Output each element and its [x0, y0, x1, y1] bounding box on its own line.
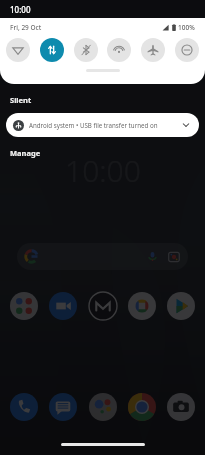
button[interactable]: App [128, 292, 156, 320]
button[interactable]: App [128, 393, 156, 421]
button[interactable]: Do not disturb [175, 38, 199, 62]
button[interactable]: Mobile data [40, 38, 64, 62]
button[interactable]: Expand notification [180, 119, 192, 131]
button[interactable]: App [49, 292, 77, 320]
button[interactable]: App [49, 393, 77, 421]
button[interactable]: App [89, 393, 117, 421]
button[interactable]: Airplane mode [141, 38, 165, 62]
button[interactable]: Hotspot [107, 38, 131, 62]
button[interactable]: App [167, 393, 195, 421]
staticText: Android system • USB file transfer turne… [29, 121, 158, 129]
button[interactable]: App [167, 292, 195, 320]
button[interactable]: Fri, 29 Oct [10, 23, 42, 32]
staticText: 10:00 [10, 4, 31, 15]
button[interactable]: Manage [10, 148, 41, 158]
button[interactable]: Android system • USB file transfer turne… [6, 113, 199, 137]
staticText: 100% [178, 23, 195, 32]
button[interactable]: Bluetooth [74, 38, 98, 62]
button[interactable]: Wi-Fi [6, 38, 30, 62]
button[interactable]: App [10, 292, 38, 320]
button[interactable] [17, 243, 188, 270]
staticText: Silent [10, 95, 32, 105]
button[interactable]: App [10, 393, 38, 421]
button[interactable]: App [89, 292, 117, 320]
